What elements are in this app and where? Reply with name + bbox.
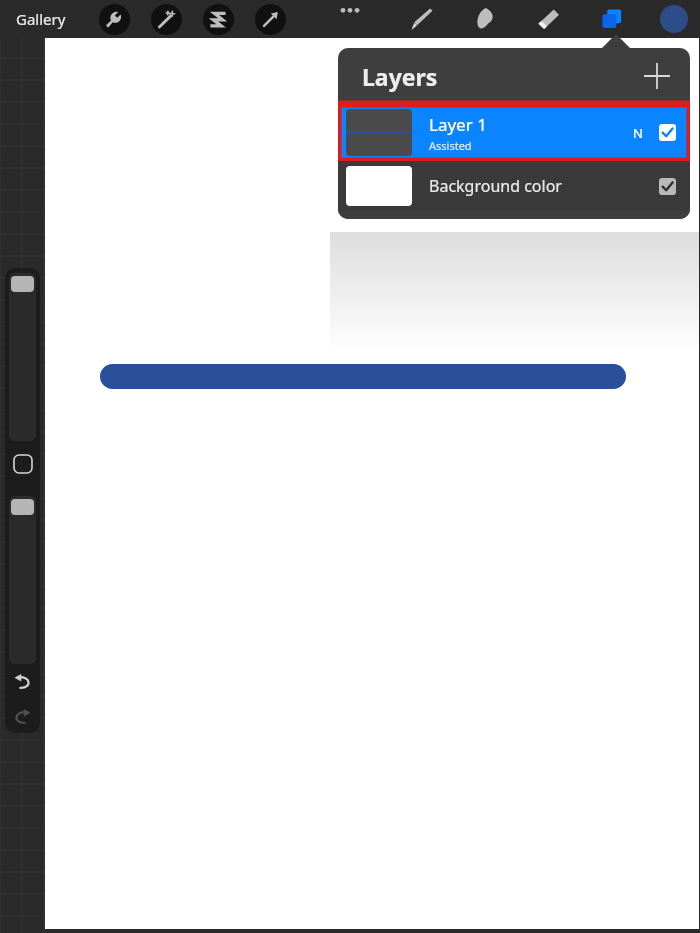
button[interactable]: Paint	[405, 3, 437, 35]
staticText: Layer 1	[429, 113, 487, 136]
staticText: Layers	[362, 61, 438, 92]
staticText: Background color	[429, 175, 659, 197]
button[interactable]: Transform	[255, 4, 286, 35]
button[interactable]: Selection S	[203, 4, 234, 35]
staticText: Gallery	[16, 9, 66, 29]
button[interactable]: Erase	[532, 3, 564, 35]
button[interactable]: Layers	[596, 3, 628, 35]
button[interactable]: Modify	[14, 455, 32, 473]
button[interactable]: Layer 1	[338, 104, 690, 161]
button[interactable]: Gallery	[12, 5, 70, 33]
button[interactable]: Layer 1 visible	[659, 124, 676, 141]
button[interactable]: Smudge	[469, 3, 501, 35]
button[interactable]: Redo	[12, 706, 33, 727]
button[interactable]: Brush size	[9, 273, 36, 441]
button[interactable]: Background visible	[659, 178, 676, 195]
button[interactable]: Opacity	[9, 496, 36, 664]
staticText: N	[633, 124, 643, 142]
button[interactable]: Adjustments	[99, 4, 130, 35]
button[interactable]: Background color	[338, 161, 690, 211]
button[interactable]: Magic	[151, 4, 182, 35]
staticText: Assisted	[429, 138, 472, 153]
button[interactable]: Add layer	[644, 63, 670, 89]
button[interactable]: More	[334, 2, 366, 34]
button[interactable]: Undo	[12, 671, 33, 692]
button[interactable]: Color	[660, 5, 688, 33]
